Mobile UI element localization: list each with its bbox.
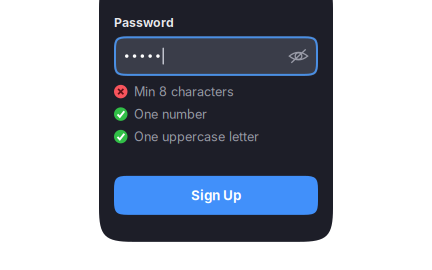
button[interactable]: Password <box>114 36 318 76</box>
staticText: Password <box>114 15 174 30</box>
staticText: Sign Up <box>191 187 241 203</box>
button[interactable]: Show password <box>288 49 308 63</box>
staticText: Min 8 characters <box>134 84 234 99</box>
button[interactable]: Sign Up <box>114 176 318 215</box>
staticText: One uppercase letter <box>134 129 259 144</box>
staticText: One number <box>134 106 207 122</box>
